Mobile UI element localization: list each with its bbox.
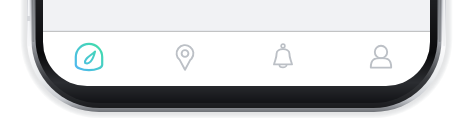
button[interactable]: Places — [137, 30, 233, 84]
button[interactable]: Profile — [333, 30, 429, 84]
button[interactable]: Dashboard — [41, 30, 137, 84]
button[interactable]: Notifications — [235, 30, 331, 84]
